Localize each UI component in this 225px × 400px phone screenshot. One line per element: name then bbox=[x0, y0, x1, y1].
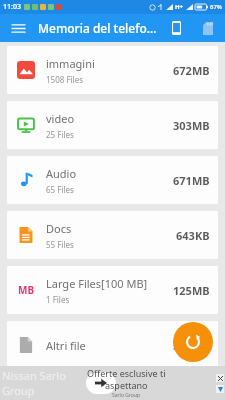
staticText: 125MB bbox=[173, 283, 210, 298]
staticText: Memoria del telefo… bbox=[38, 20, 157, 36]
button[interactable]: Audio bbox=[7, 156, 218, 204]
button[interactable]: Docs bbox=[7, 211, 218, 259]
staticText: 1508 Files bbox=[46, 74, 84, 85]
staticText: 671MB bbox=[173, 173, 210, 188]
staticText: 25 Files bbox=[46, 129, 74, 140]
button[interactable]: Phone storage bbox=[165, 17, 187, 39]
staticText: 1 Files bbox=[46, 294, 70, 305]
button[interactable]: immagini bbox=[7, 46, 218, 94]
button[interactable]: Altri file bbox=[7, 321, 218, 369]
staticText: 11:03 bbox=[3, 2, 21, 12]
staticText: 55 Files bbox=[46, 239, 74, 250]
staticText: 643KB bbox=[176, 228, 210, 243]
staticText: immagini bbox=[46, 56, 95, 71]
staticText: MB bbox=[18, 283, 35, 297]
staticText: Docs bbox=[46, 221, 72, 236]
button[interactable]: SD card storage bbox=[197, 17, 219, 39]
staticText: 65 Files bbox=[46, 184, 74, 195]
staticText: 554MB bbox=[173, 338, 210, 353]
staticText: Large Files[100 MB] bbox=[46, 276, 148, 291]
staticText: Altri file bbox=[46, 338, 86, 353]
button[interactable]: MB bbox=[7, 266, 218, 314]
button[interactable]: video bbox=[7, 101, 218, 149]
staticText: 67% bbox=[210, 3, 222, 11]
button[interactable]: Nissan Sarlo bbox=[0, 366, 225, 400]
staticText: 672MB bbox=[173, 63, 210, 78]
staticText: Group bbox=[2, 383, 35, 398]
staticText: Sarlo Group bbox=[112, 392, 141, 399]
staticText: Nissan Sarlo bbox=[2, 368, 66, 383]
button[interactable]: Refresh bbox=[173, 322, 213, 362]
staticText: aspettano bbox=[105, 379, 148, 391]
button[interactable]: Open navigation menu bbox=[7, 17, 29, 39]
staticText: Audio bbox=[46, 166, 77, 181]
staticText: 303MB bbox=[173, 118, 210, 133]
button[interactable]: Close ad bbox=[216, 374, 224, 382]
staticText: Offerte esclusive ti bbox=[87, 367, 166, 379]
staticText: H+ bbox=[175, 3, 184, 11]
staticText: video bbox=[46, 111, 75, 126]
